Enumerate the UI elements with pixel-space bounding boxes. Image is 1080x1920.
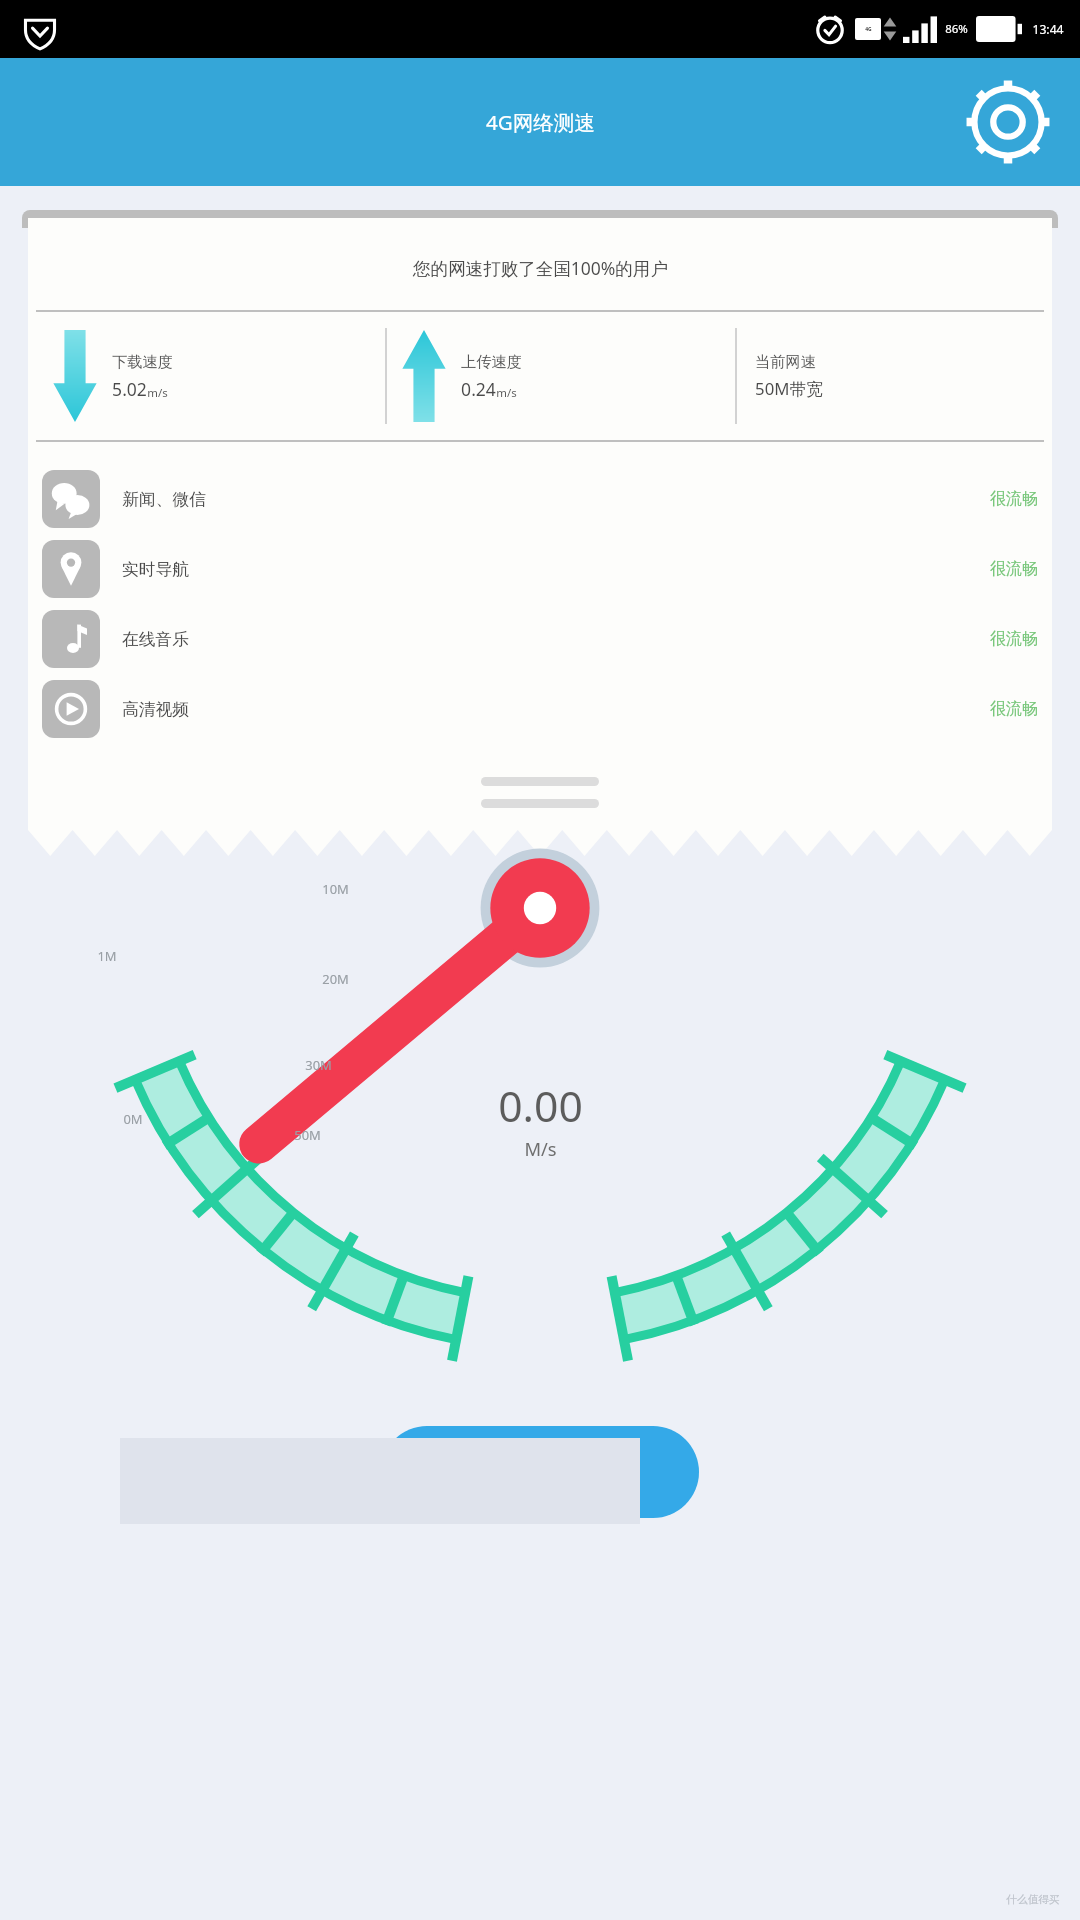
button[interactable]: Settings — [960, 74, 1056, 170]
staticText: 13:44 — [1032, 21, 1064, 38]
button[interactable]: 新闻、微信 — [28, 464, 1052, 534]
staticText: 1M — [97, 947, 117, 965]
staticText: 0M — [123, 1110, 143, 1128]
staticText: 很流畅 — [990, 629, 1038, 649]
staticText: 什么值得买 — [1006, 1893, 1060, 1906]
staticText: 下载速度 — [112, 352, 173, 371]
staticText: m/s — [496, 385, 517, 401]
staticText: 当前网速 — [755, 352, 816, 371]
staticText: 在线音乐 — [122, 629, 189, 650]
staticText: 50M带宽 — [755, 377, 823, 400]
staticText: 很流畅 — [990, 559, 1038, 579]
staticText: 您的网速打败了全国100%的用户 — [413, 256, 668, 280]
staticText: 4G — [865, 26, 872, 33]
button[interactable]: 实时导航 — [28, 534, 1052, 604]
staticText: m/s — [147, 385, 168, 401]
staticText: 50M — [294, 1126, 321, 1144]
staticText: 10M — [322, 880, 349, 898]
staticText: M/s — [524, 1136, 557, 1161]
staticText: 0.24 — [461, 377, 496, 401]
staticText: 5.02 — [112, 377, 147, 401]
staticText: 很流畅 — [990, 699, 1038, 719]
staticText: 4G网络测速 — [486, 108, 595, 136]
staticText: 新闻、微信 — [122, 489, 206, 510]
button[interactable]: 在线音乐 — [28, 604, 1052, 674]
button[interactable]: 开始测速 — [381, 1426, 699, 1518]
staticText: 0.00 — [498, 1076, 583, 1134]
staticText: 高清视频 — [122, 699, 189, 720]
staticText: 上传速度 — [461, 352, 522, 371]
staticText: 86% — [945, 21, 968, 37]
staticText: 20M — [322, 970, 349, 988]
staticText: 很流畅 — [990, 489, 1038, 509]
staticText: 实时导航 — [122, 559, 189, 580]
staticText: 30M — [305, 1056, 332, 1074]
button[interactable]: 高清视频 — [28, 674, 1052, 744]
